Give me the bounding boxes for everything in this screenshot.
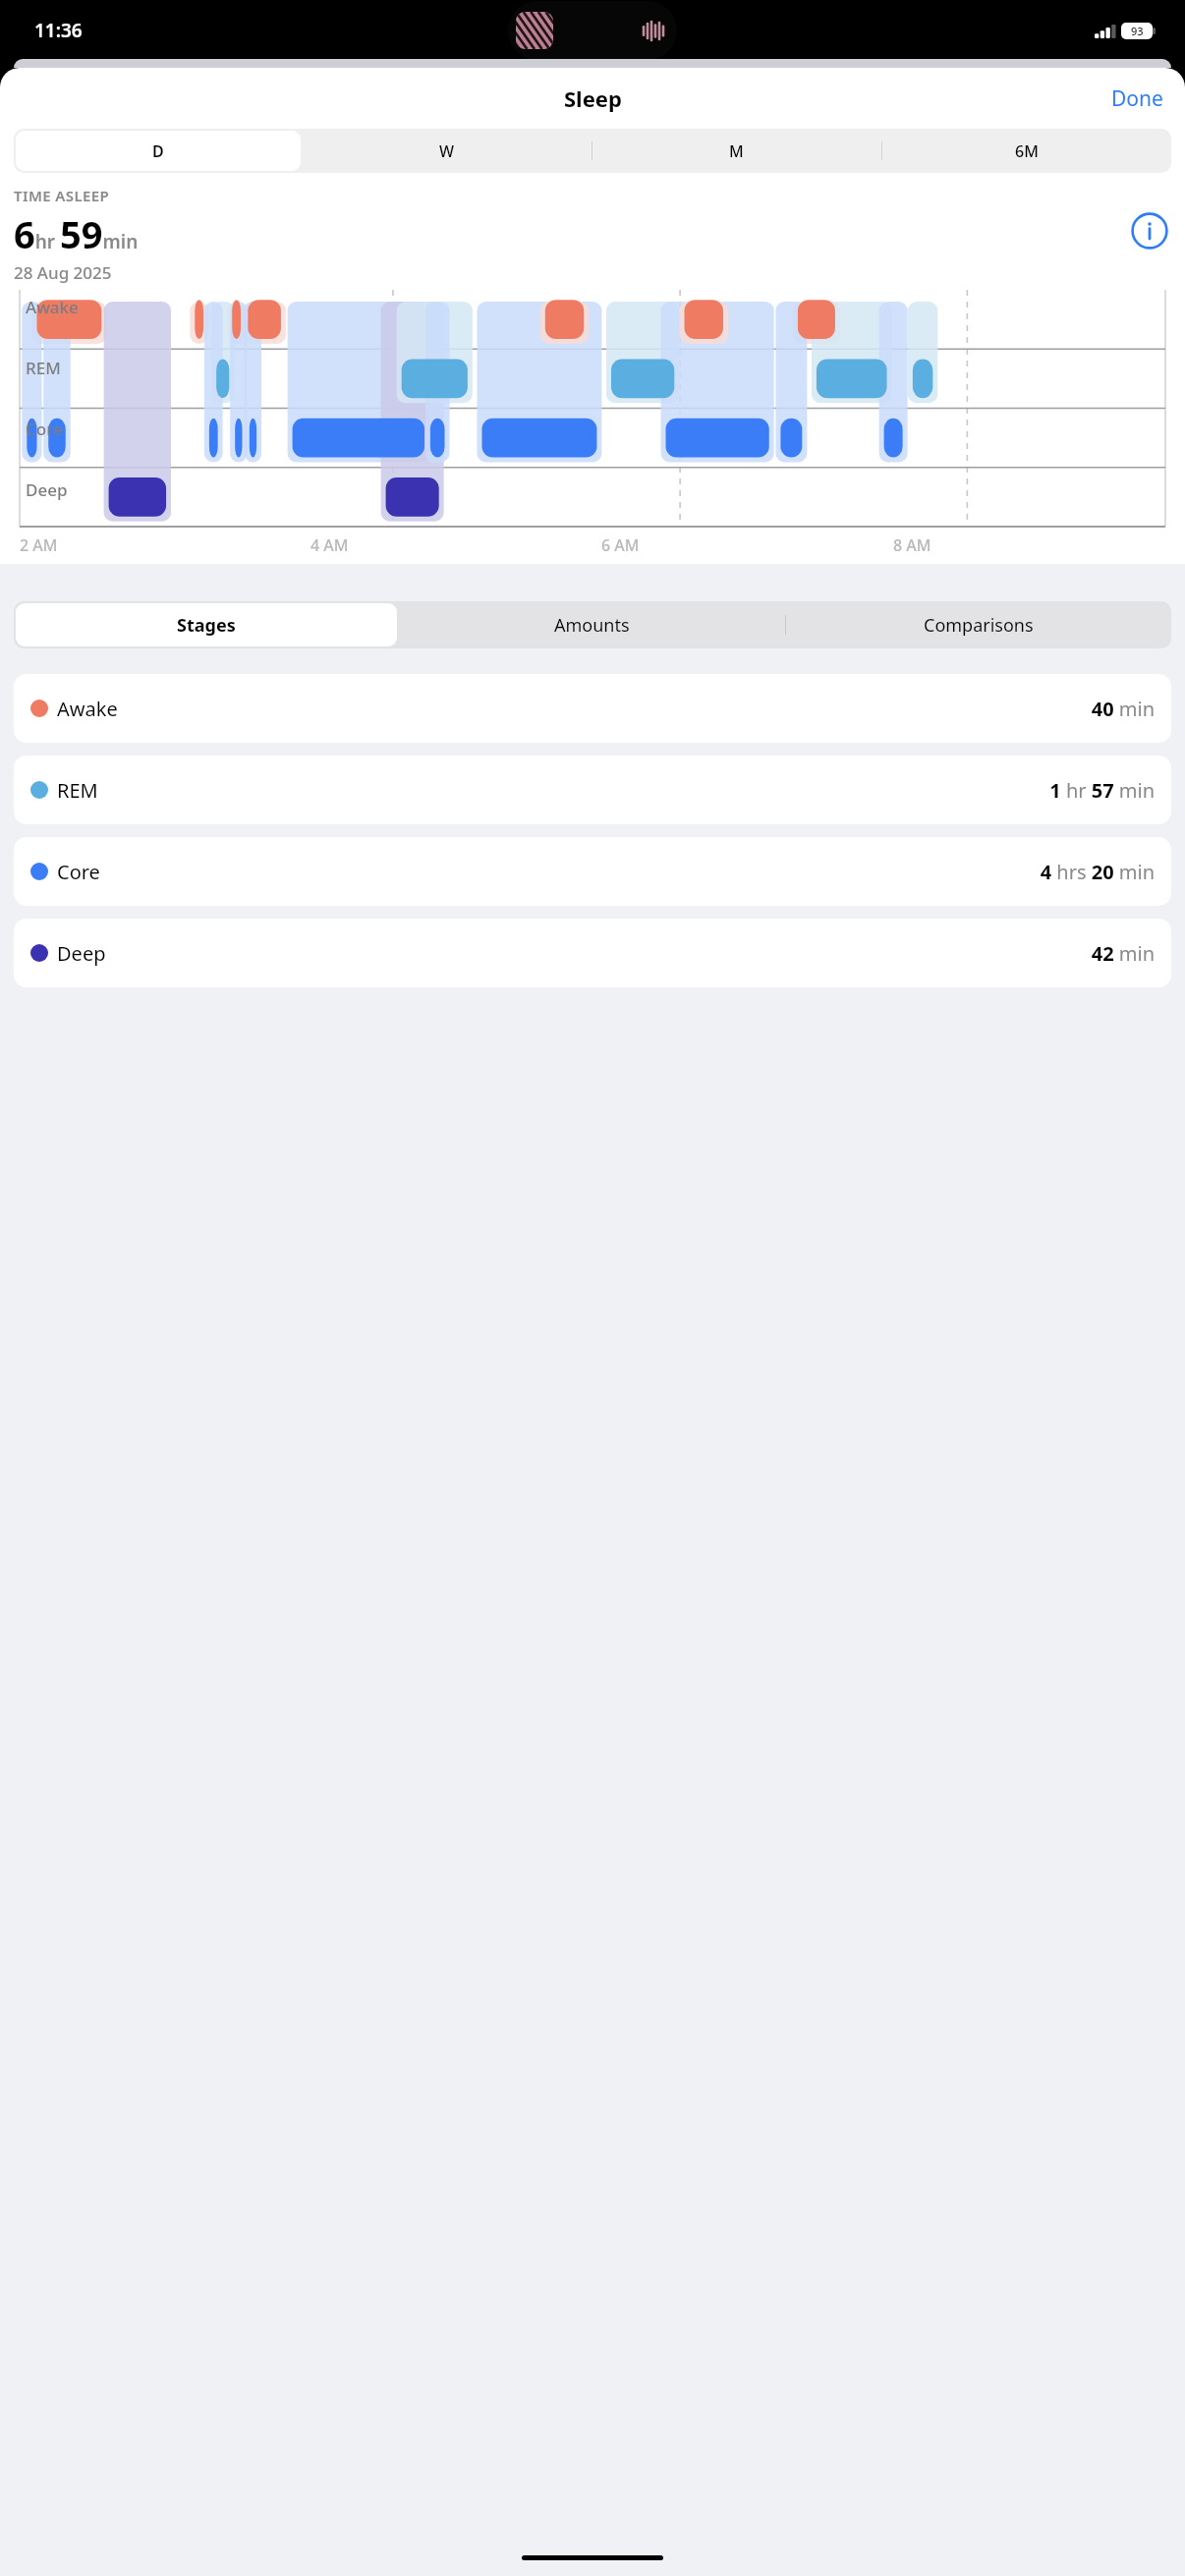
button[interactable]: Amounts — [399, 601, 785, 648]
staticText: 11:36 — [34, 18, 83, 43]
button[interactable]: Info about sleep stages — [1128, 209, 1171, 252]
staticText: Deep — [26, 478, 68, 501]
staticText: REM — [26, 357, 61, 379]
button[interactable]: W — [303, 129, 592, 173]
staticText: 93 — [1131, 24, 1144, 38]
staticText: W — [439, 140, 455, 162]
staticText: 1 hr 57 min — [1049, 777, 1155, 804]
staticText: Sleep — [564, 84, 622, 113]
staticText: TIME ASLEEP — [14, 186, 110, 205]
staticText: Comparisons — [924, 613, 1034, 638]
staticText: Core — [26, 418, 63, 440]
staticText: 6M — [1015, 140, 1039, 162]
button[interactable]: M — [592, 129, 881, 173]
button[interactable]: Awake — [14, 674, 1171, 743]
button[interactable]: REM — [14, 756, 1171, 824]
staticText: 28 Aug 2025 — [14, 261, 112, 284]
button[interactable]: Core — [14, 837, 1171, 906]
button[interactable]: Deep — [14, 919, 1171, 987]
staticText: Amounts — [554, 613, 630, 638]
button[interactable]: Stages — [14, 601, 399, 648]
staticText: 8 AM — [893, 534, 931, 556]
staticText: 4 AM — [310, 534, 349, 556]
staticText: Stages — [177, 613, 236, 638]
staticText: 42 min — [1091, 940, 1155, 967]
staticText: Deep — [57, 940, 106, 967]
staticText: REM — [57, 777, 98, 804]
staticText: 4 hrs 20 min — [1040, 859, 1155, 885]
staticText: 6hr 59min — [14, 208, 139, 259]
staticText: Done — [1111, 84, 1163, 113]
button[interactable]: D — [14, 129, 303, 173]
button[interactable]: Comparisons — [785, 601, 1171, 648]
staticText: Awake — [57, 696, 118, 722]
button[interactable]: Done — [1090, 77, 1185, 121]
staticText: Core — [57, 859, 100, 885]
staticText: Awake — [26, 296, 79, 318]
staticText: D — [152, 140, 164, 162]
button[interactable]: 6M — [881, 129, 1171, 173]
staticText: 2 AM — [20, 534, 58, 556]
staticText: M — [729, 140, 744, 162]
staticText: 40 min — [1091, 696, 1155, 722]
staticText: 6 AM — [601, 534, 640, 556]
